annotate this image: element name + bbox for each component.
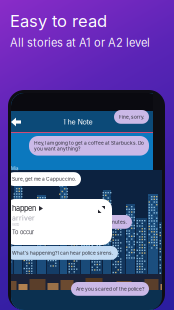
staticText: To occur bbox=[12, 229, 34, 236]
staticText: Easy to read bbox=[10, 11, 107, 31]
staticText: Sure, get me a Cappuccino. bbox=[12, 176, 76, 182]
button[interactable]: Back bbox=[8, 114, 24, 130]
staticText: Are you scared of the police? bbox=[76, 286, 144, 292]
staticText: The Note bbox=[62, 118, 92, 126]
staticText: arriver bbox=[12, 214, 35, 222]
staticText: All stories at A1 or A2 level bbox=[10, 36, 150, 49]
staticText: verb bbox=[12, 222, 19, 227]
staticText: happen bbox=[12, 204, 36, 213]
staticText: Hey, I am going to get a coffee at Starb… bbox=[34, 140, 144, 152]
staticText: minutes. bbox=[107, 219, 127, 225]
staticText: What's happening? I can hear police sire… bbox=[12, 250, 113, 256]
staticText: Mia bbox=[11, 166, 18, 171]
button[interactable]: Expand bbox=[98, 206, 105, 213]
staticText: Fine, sorry. bbox=[119, 114, 144, 120]
